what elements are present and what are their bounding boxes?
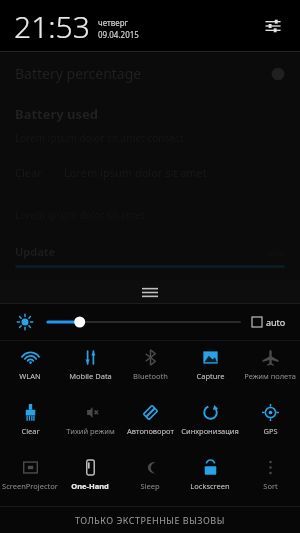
button[interactable]: Синхронизация <box>180 396 240 451</box>
staticText: Battery percentage <box>15 64 142 83</box>
staticText: Update <box>15 244 56 259</box>
button[interactable]: GPS <box>240 396 300 451</box>
button[interactable]: Settings <box>256 9 290 43</box>
staticText: ScreenProjector <box>2 481 58 491</box>
button[interactable]: Brightness slider <box>48 311 240 333</box>
staticText: Clear <box>15 165 42 180</box>
button[interactable]: Bluetooth <box>120 341 180 396</box>
button[interactable]: Режим полета <box>240 341 300 396</box>
staticText: auto <box>266 316 286 328</box>
staticText: Capture <box>196 371 225 381</box>
button[interactable]: Mobile Data <box>60 341 120 396</box>
button[interactable]: ScreenProjector <box>0 451 60 506</box>
button[interactable]: Panel handle <box>0 280 300 304</box>
button[interactable]: Sort <box>240 451 300 506</box>
button[interactable]: Автоповорот <box>120 396 180 451</box>
button[interactable]: Тихий режим <box>60 396 120 451</box>
staticText: GPS <box>263 426 278 436</box>
staticText: WLAN <box>19 371 41 381</box>
staticText: Battery used <box>15 105 99 123</box>
staticText: Lorem ipsum dolor sit amet <box>64 165 207 180</box>
button[interactable]: Lockscreen <box>180 451 240 506</box>
button[interactable]: Clear <box>0 396 60 451</box>
staticText: One-Hand <box>71 481 109 491</box>
staticText: 21:53 <box>14 6 90 47</box>
button[interactable]: auto <box>250 316 288 328</box>
staticText: Тихий режим <box>66 426 115 436</box>
staticText: четверг <box>98 17 129 28</box>
staticText: Sleep <box>140 481 160 491</box>
staticText: ТОЛЬКО ЭКСТРЕННЫЕ ВЫЗОВЫ <box>75 514 225 526</box>
button[interactable]: Brightness <box>12 309 38 335</box>
button[interactable]: WLAN <box>0 341 60 396</box>
button[interactable]: Capture <box>180 341 240 396</box>
staticText: Clear <box>21 426 40 436</box>
staticText: Синхронизация <box>181 426 239 436</box>
staticText: Mobile Data <box>69 371 112 381</box>
staticText: Bluetooth <box>133 371 168 381</box>
staticText: Автоповорот <box>127 426 174 436</box>
button[interactable]: One-Hand <box>60 451 120 506</box>
staticText: Режим полета <box>244 371 296 381</box>
staticText: Sort <box>263 481 278 491</box>
button[interactable]: Sleep <box>120 451 180 506</box>
staticText: 09.04.2015 <box>98 29 139 40</box>
staticText: Lockscreen <box>190 481 230 491</box>
